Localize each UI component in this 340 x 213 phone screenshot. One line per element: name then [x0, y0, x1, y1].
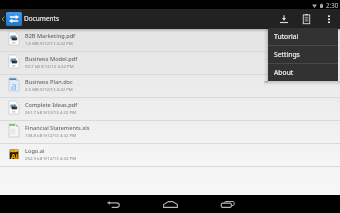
button[interactable]: Home: [148, 195, 193, 213]
button[interactable]: Settings: [268, 46, 338, 63]
staticText: About: [274, 68, 294, 77]
staticText: a: [11, 79, 17, 92]
staticText: Business Plan.doc: [25, 78, 73, 86]
staticText: 93.7 kB 9/12/13 4:32 PM: [25, 63, 74, 69]
staticText: Complete Ideas.pdf: [25, 101, 78, 109]
button[interactable]: a: [0, 75, 340, 98]
staticText: 2.5 MB 9/12/13 4:32 PM: [25, 86, 73, 92]
staticText: 252.9 kB 9/12/13 4:32 PM: [25, 155, 77, 161]
button[interactable]: Tutorial: [268, 28, 338, 45]
staticText: Settings: [274, 50, 300, 59]
staticText: Documents: [24, 14, 60, 23]
button[interactable]: Ai: [0, 144, 340, 167]
staticText: 2:30: [326, 1, 339, 9]
button[interactable]: Back: [91, 195, 136, 213]
other: Navigate up: [1, 15, 5, 23]
button[interactable]: Financial Statements.xls: [0, 121, 340, 144]
button[interactable]: More options: [318, 9, 340, 29]
staticText: Tutorial: [274, 32, 299, 41]
button[interactable]: About: [268, 64, 338, 81]
staticText: 138.8 kB 9/12/13 4:32 PM: [25, 132, 77, 138]
staticText: 261.7 kB 9/12/13 4:32 PM: [25, 109, 77, 115]
button[interactable]: Navigate up: [0, 9, 64, 29]
staticText: B2B Marketing.pdf: [25, 32, 76, 40]
staticText: Financial Statements.xls: [25, 124, 90, 132]
staticText: 1.6 MB 9/12/13 4:32 PM: [25, 40, 73, 46]
button[interactable]: Recent apps: [205, 195, 250, 213]
staticText: Ai: [11, 152, 18, 162]
button[interactable]: B2B Marketing.pdf: [0, 29, 340, 52]
button[interactable]: Business Model.pdf: [0, 52, 340, 75]
button[interactable]: Clipboard: [295, 9, 318, 29]
button[interactable]: Download: [272, 9, 295, 29]
staticText: Logo.ai: [25, 147, 45, 155]
staticText: Business Model.pdf: [25, 55, 78, 63]
button[interactable]: Complete Ideas.pdf: [0, 98, 340, 121]
